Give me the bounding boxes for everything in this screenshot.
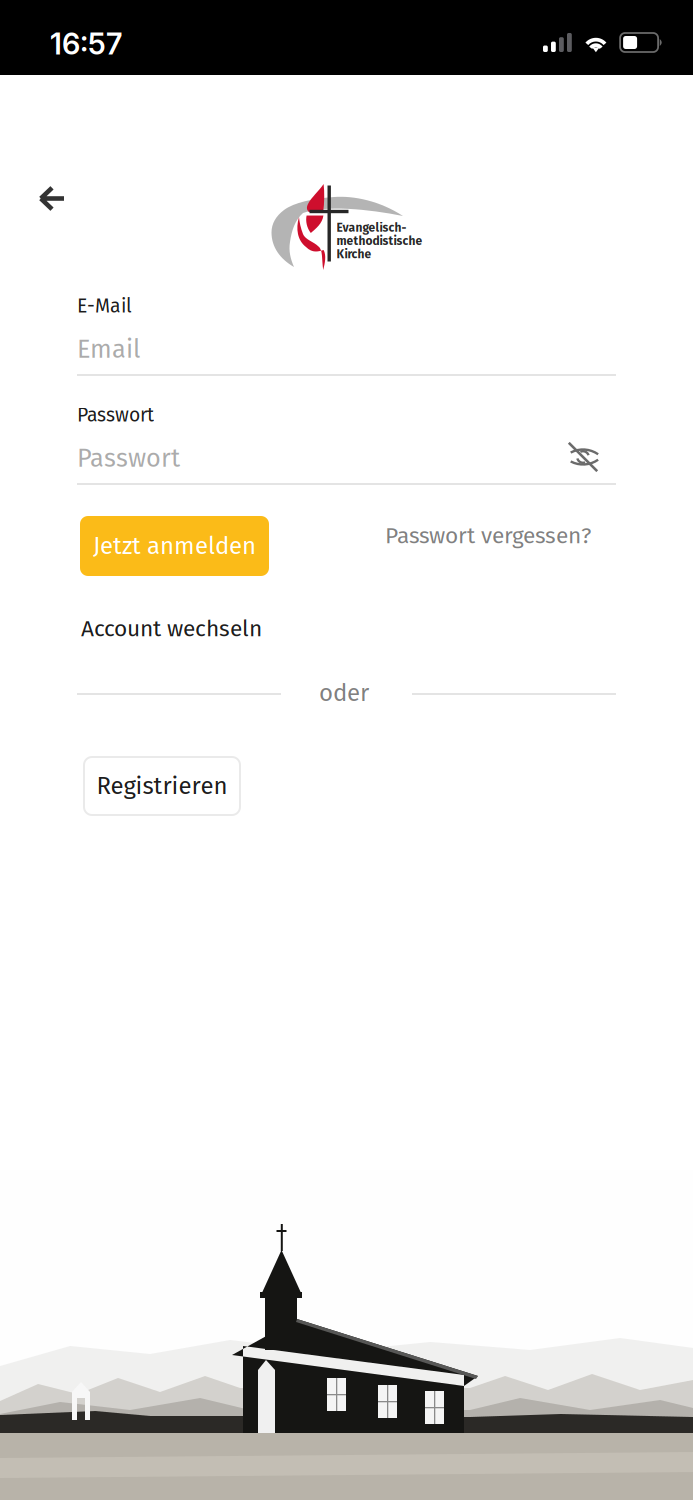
button[interactable]: Jetzt anmelden (80, 516, 269, 576)
button[interactable]: Registrieren (84, 757, 240, 815)
button[interactable]: Zurück (26, 174, 78, 223)
staticText: Email (77, 334, 140, 364)
staticText: Passwort (77, 403, 154, 427)
staticText: oder (319, 678, 369, 707)
button[interactable]: Passwort anzeigen (566, 440, 600, 474)
button[interactable]: Account wechseln (71, 605, 272, 652)
staticText: Registrieren (96, 772, 227, 800)
staticText: 16:57 (50, 26, 122, 61)
button[interactable]: Passwort vergessen? (375, 512, 601, 559)
staticText: Evangelisch- (336, 220, 406, 235)
staticText: Kirche (336, 247, 371, 261)
staticText: Passwort (77, 443, 180, 473)
staticText: E-Mail (77, 294, 132, 318)
staticText: Jetzt anmelden (93, 532, 256, 560)
staticText: Account wechseln (81, 615, 262, 642)
staticText: methodistische (336, 234, 422, 248)
staticText: Passwort vergessen? (385, 522, 591, 549)
